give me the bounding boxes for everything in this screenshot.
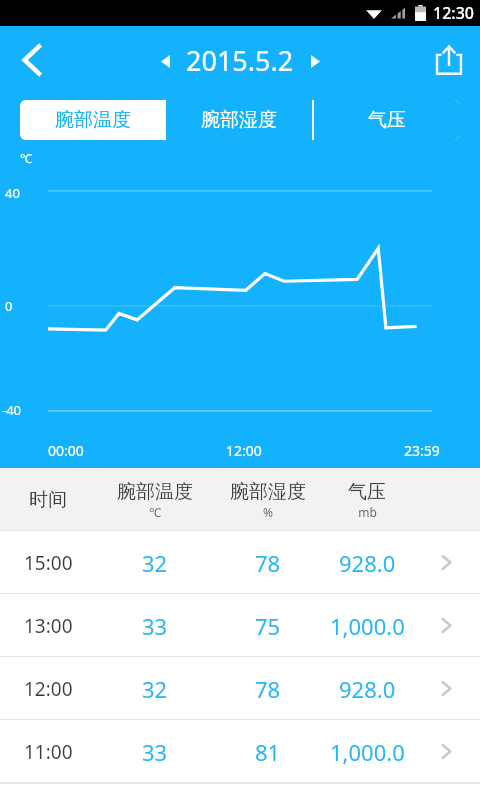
- staticText: 32: [142, 674, 168, 704]
- button[interactable]: Share: [418, 26, 480, 94]
- staticText: 11:00: [24, 739, 73, 765]
- staticText: 时间: [29, 488, 67, 512]
- staticText: 12:30: [433, 2, 474, 24]
- button[interactable]: 腕部温度: [20, 100, 166, 140]
- button[interactable]: 11:00: [0, 720, 480, 783]
- staticText: 928.0: [339, 548, 396, 578]
- staticText: 腕部温度: [117, 480, 193, 504]
- staticText: 33: [142, 737, 168, 767]
- staticText: 00:00: [48, 441, 84, 460]
- staticText: 23:59: [404, 441, 440, 460]
- staticText: 15:00: [24, 550, 73, 576]
- staticText: 气压: [348, 480, 386, 504]
- staticText: 32: [142, 548, 168, 578]
- button[interactable]: 13:00: [0, 594, 480, 657]
- staticText: 12:00: [226, 441, 262, 460]
- button[interactable]: 气压: [314, 100, 460, 140]
- staticText: 2015.5.2: [186, 42, 294, 79]
- staticText: 13:00: [24, 613, 73, 639]
- button[interactable]: Next day: [300, 46, 330, 76]
- staticText: 气压: [368, 108, 406, 132]
- staticText: 928.0: [339, 674, 396, 704]
- staticText: 33: [142, 611, 168, 641]
- staticText: mb: [358, 504, 377, 520]
- staticText: 0: [5, 297, 13, 315]
- staticText: ℃: [149, 504, 161, 520]
- staticText: ℃: [20, 150, 32, 166]
- staticText: 40: [5, 184, 20, 202]
- button[interactable]: 15:00: [0, 531, 480, 594]
- staticText: 12:00: [24, 676, 73, 702]
- button[interactable]: 12:00: [0, 657, 480, 720]
- staticText: %: [263, 504, 273, 520]
- staticText: 78: [255, 548, 281, 578]
- staticText: 腕部湿度: [230, 480, 306, 504]
- staticText: 腕部湿度: [201, 108, 277, 132]
- staticText: 腕部温度: [55, 108, 131, 132]
- staticText: 78: [255, 674, 281, 704]
- staticText: -40: [2, 401, 22, 419]
- button[interactable]: Previous day: [150, 46, 180, 76]
- staticText: 1,000.0: [330, 611, 405, 641]
- staticText: 81: [255, 737, 281, 767]
- staticText: 1,000.0: [330, 737, 405, 767]
- button[interactable]: Back: [0, 26, 64, 94]
- button[interactable]: 腕部湿度: [166, 100, 312, 140]
- staticText: 75: [255, 611, 281, 641]
